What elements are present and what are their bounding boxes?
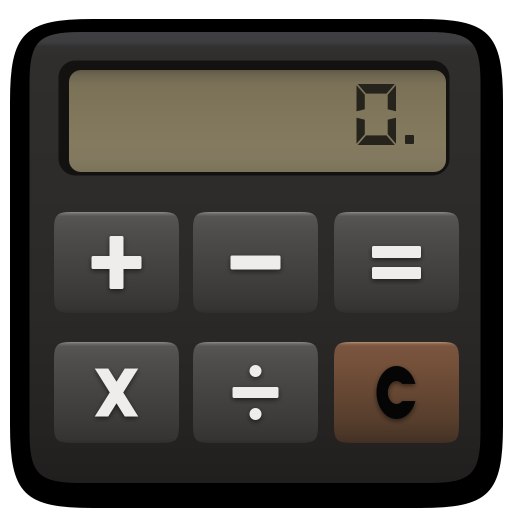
button[interactable]: Plus <box>54 212 179 313</box>
button[interactable]: Minus <box>193 212 318 313</box>
button[interactable]: Clear <box>334 342 459 443</box>
button[interactable]: Divide <box>193 342 318 443</box>
button[interactable]: Equals <box>334 212 459 313</box>
button[interactable]: Multiply <box>54 342 179 443</box>
